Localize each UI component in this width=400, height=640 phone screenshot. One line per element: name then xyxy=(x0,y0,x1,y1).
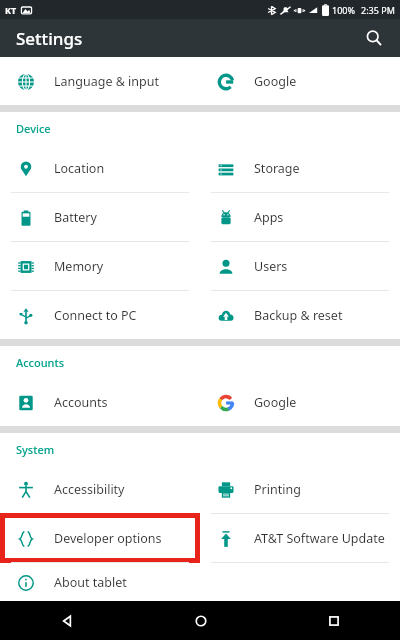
button[interactable]: Back xyxy=(0,601,134,640)
button[interactable]: Memory xyxy=(0,242,200,290)
staticText: Google xyxy=(254,394,297,411)
button[interactable]: Recents xyxy=(267,601,400,640)
staticText: Apps xyxy=(254,209,284,226)
button[interactable]: Google xyxy=(200,57,400,105)
staticText: Battery xyxy=(54,209,97,226)
staticText: Users xyxy=(254,258,288,275)
staticText: Settings xyxy=(16,27,83,50)
staticText: Connect to PC xyxy=(54,307,137,324)
staticText: AT&T Software Update xyxy=(254,530,385,547)
staticText: 100% xyxy=(332,4,355,16)
button[interactable]: About tablet xyxy=(0,563,200,601)
staticText: 2:35 PM xyxy=(361,4,395,16)
button[interactable]: Accessibility xyxy=(0,465,200,513)
button[interactable]: Language & input xyxy=(0,57,200,105)
button[interactable]: AT&T Software Update xyxy=(200,514,400,562)
button[interactable]: Users xyxy=(200,242,400,290)
staticText: Device xyxy=(16,121,51,136)
staticText: Accounts xyxy=(16,355,65,370)
button[interactable]: Accounts xyxy=(0,378,200,426)
staticText: Location xyxy=(54,160,105,177)
staticText: Accounts xyxy=(54,394,108,411)
button[interactable]: Home xyxy=(134,601,267,640)
button[interactable]: Search xyxy=(356,20,392,56)
staticText: Printing xyxy=(254,481,301,498)
staticText: Backup & reset xyxy=(254,307,343,324)
staticText: Storage xyxy=(254,160,300,177)
button[interactable]: Battery xyxy=(0,193,200,241)
staticText: KT xyxy=(5,4,17,16)
staticText: Memory xyxy=(54,258,104,275)
button[interactable]: Google xyxy=(200,378,400,426)
staticText: Google xyxy=(254,73,297,90)
button[interactable]: Storage xyxy=(200,144,400,192)
button[interactable]: Connect to PC xyxy=(0,291,200,339)
button[interactable]: Backup & reset xyxy=(200,291,400,339)
staticText: About tablet xyxy=(54,574,127,591)
staticText: System xyxy=(16,442,55,457)
button[interactable]: Printing xyxy=(200,465,400,513)
button[interactable]: Apps xyxy=(200,193,400,241)
button[interactable]: Location xyxy=(0,144,200,192)
button[interactable]: Developer options xyxy=(0,514,200,562)
staticText: Accessibility xyxy=(54,481,125,498)
staticText: Developer options xyxy=(54,530,162,547)
staticText: Language & input xyxy=(54,73,159,90)
